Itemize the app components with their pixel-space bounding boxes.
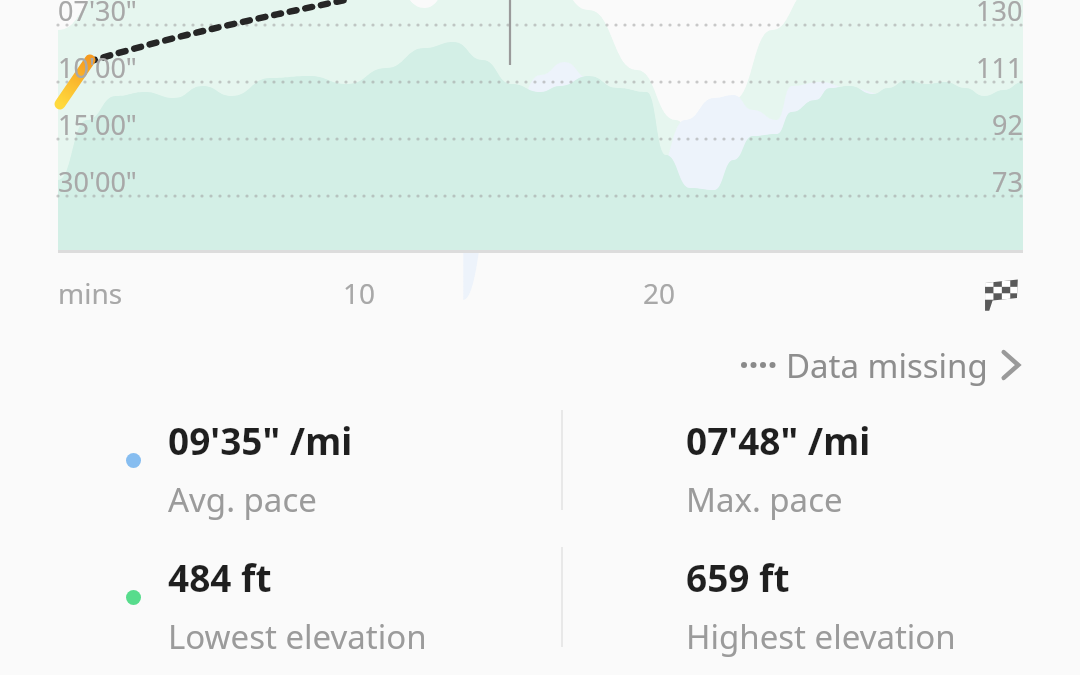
button[interactable]: 09'35" /mi: [168, 415, 548, 522]
staticText: 130: [976, 0, 1023, 29]
button[interactable]: 07'48" /mi: [686, 415, 1066, 522]
staticText: 07'48" /mi: [686, 415, 871, 465]
button[interactable]: Finish: [980, 272, 1022, 314]
staticText: 10: [343, 274, 376, 312]
staticText: Highest elevation: [686, 614, 956, 659]
staticText: 09'35" /mi: [168, 415, 353, 465]
staticText: 15'00": [58, 106, 137, 143]
staticText: 92: [992, 106, 1023, 143]
staticText: 07'30": [58, 0, 137, 29]
staticText: Data missing: [786, 343, 988, 388]
button[interactable]: 659 ft: [686, 552, 1066, 659]
staticText: 111: [976, 49, 1023, 86]
staticText: 659 ft: [686, 552, 790, 602]
staticText: Max. pace: [686, 477, 843, 522]
button[interactable]: Data missing: [740, 340, 1024, 390]
staticText: 20: [643, 274, 676, 312]
staticText: 484 ft: [168, 552, 272, 602]
staticText: mins: [58, 274, 123, 312]
staticText: Lowest elevation: [168, 614, 427, 659]
staticText: 30'00": [58, 163, 137, 200]
staticText: Avg. pace: [168, 477, 317, 522]
staticText: 10'00": [58, 49, 137, 86]
button[interactable]: 484 ft: [168, 552, 548, 659]
staticText: 73: [992, 163, 1023, 200]
